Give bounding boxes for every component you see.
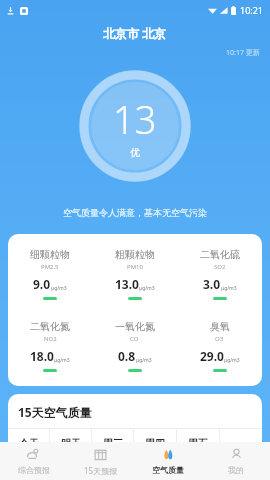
button[interactable]: 一氧化氮 bbox=[92, 316, 177, 376]
staticText: CO bbox=[130, 335, 139, 343]
staticText: 一氧化氮 bbox=[115, 320, 155, 333]
staticText: 29.0 bbox=[200, 348, 224, 364]
staticText: O3 bbox=[215, 335, 224, 343]
staticText: 15天预报 bbox=[84, 465, 118, 476]
staticText: 今天 bbox=[19, 437, 39, 450]
staticText: 67 bbox=[107, 471, 119, 480]
button[interactable]: 周五 bbox=[177, 429, 219, 480]
staticText: NO2 bbox=[44, 335, 57, 343]
staticText: μg/m3 bbox=[54, 357, 70, 364]
staticText: μg/m3 bbox=[51, 285, 67, 292]
staticText: μg/m3 bbox=[136, 357, 152, 364]
staticText: 0.8 bbox=[118, 348, 136, 364]
staticText: SO2 bbox=[214, 263, 226, 271]
staticText: 明天 bbox=[61, 437, 81, 450]
button[interactable]: 空气质量 bbox=[134, 442, 202, 480]
button[interactable]: 周三 bbox=[92, 429, 133, 480]
staticText: 空气质量 bbox=[152, 465, 184, 475]
staticText: μg/m3 bbox=[221, 285, 237, 292]
button[interactable]: 二氧化硫 bbox=[177, 244, 262, 304]
staticText: 空气质量令人满意，基本无空气污染 bbox=[0, 207, 270, 218]
staticText: 粗颗粒物 bbox=[115, 248, 155, 261]
button[interactable]: 粗颗粒物 bbox=[92, 244, 177, 304]
staticText: 15天空气质量 bbox=[18, 404, 92, 420]
staticText: PM2.5 bbox=[41, 263, 59, 271]
staticText: PM10 bbox=[127, 263, 143, 271]
staticText: 13.0 bbox=[115, 276, 139, 292]
staticText: 细颗粒物 bbox=[30, 248, 70, 261]
staticText: μg/m3 bbox=[139, 285, 155, 292]
button[interactable]: 周四 bbox=[134, 429, 176, 480]
button[interactable]: 细颗粒物 bbox=[8, 244, 92, 304]
button[interactable]: 综合预报 bbox=[0, 442, 67, 480]
staticText: 臭氧 bbox=[210, 320, 230, 333]
staticText: 北京市 北京 bbox=[103, 25, 167, 41]
staticText: 08/15 bbox=[19, 453, 38, 463]
button[interactable]: 15天预报 bbox=[67, 442, 134, 480]
button[interactable]: 二氧化氮 bbox=[8, 316, 92, 376]
button[interactable]: 我的 bbox=[202, 442, 270, 480]
staticText: 08/18 bbox=[146, 453, 165, 463]
staticText: 我的 bbox=[228, 465, 244, 475]
staticText: 二氧化硫 bbox=[200, 248, 240, 261]
button[interactable]: 臭氧 bbox=[177, 316, 262, 376]
staticText: 3.0 bbox=[203, 276, 221, 292]
button[interactable]: 明天 bbox=[50, 429, 91, 480]
staticText: 9.0 bbox=[33, 276, 51, 292]
button[interactable]: 今天 bbox=[8, 429, 49, 480]
staticText: 10:21 bbox=[240, 4, 264, 16]
staticText: 二氧化氮 bbox=[30, 320, 70, 333]
staticText: 优 bbox=[130, 146, 140, 159]
staticText: 10:17 更新 bbox=[226, 48, 260, 58]
staticText: 48 bbox=[23, 471, 35, 480]
staticText: 周三 bbox=[103, 437, 123, 450]
staticText: 13 bbox=[113, 93, 157, 145]
staticText: 40 bbox=[149, 471, 161, 480]
staticText: 周五 bbox=[188, 437, 208, 450]
staticText: μg/m3 bbox=[224, 357, 240, 364]
staticText: 08/17 bbox=[103, 453, 122, 463]
staticText: 综合预报 bbox=[18, 465, 50, 475]
staticText: 周四 bbox=[145, 437, 165, 450]
staticText: 18.0 bbox=[30, 348, 54, 364]
